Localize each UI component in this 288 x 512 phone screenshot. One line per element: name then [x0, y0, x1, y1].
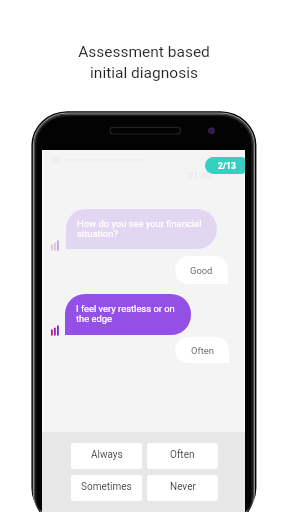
button[interactable]: Often	[175, 337, 229, 363]
staticText: Often	[170, 449, 195, 461]
button[interactable]: Often	[147, 443, 218, 469]
staticText: initial diagnosis	[90, 64, 198, 82]
button[interactable]: I feel very restless or on the edge	[65, 294, 191, 335]
staticText: How do you see your financial situation?	[77, 218, 202, 240]
staticText: Never	[170, 481, 196, 493]
staticText: Always	[91, 449, 123, 461]
staticText: Often	[191, 345, 214, 356]
button[interactable]: Never	[147, 475, 218, 501]
button[interactable]: Good	[175, 256, 228, 284]
button[interactable]: Question 2 of 13	[205, 157, 245, 174]
staticText: 2/13	[218, 161, 236, 171]
staticText: Assessment based	[78, 43, 210, 61]
button[interactable]: How do you see your financial situation?	[66, 209, 217, 249]
button[interactable]: Sometimes	[71, 475, 142, 501]
staticText: 21:40	[188, 170, 212, 181]
button[interactable]: Always	[71, 443, 142, 469]
staticText: Sometimes	[81, 481, 132, 493]
staticText: I feel very restless or on the edge	[76, 303, 175, 325]
staticText: Good	[190, 265, 213, 276]
